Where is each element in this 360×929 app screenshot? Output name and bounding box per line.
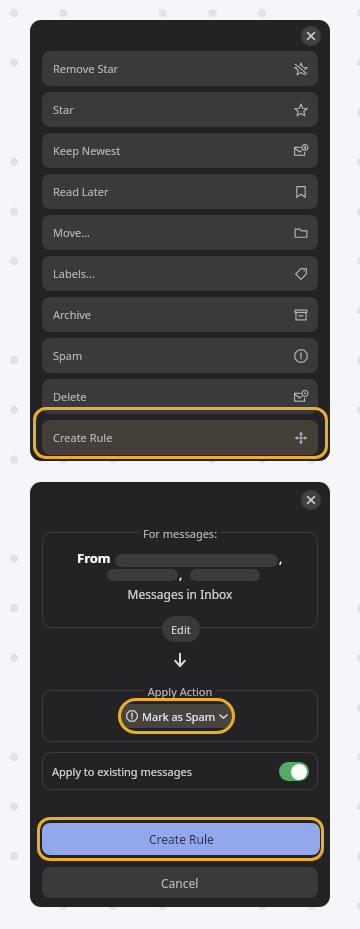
button[interactable]: Remove Star <box>42 51 318 86</box>
staticText: Remove Star <box>53 61 119 76</box>
staticText: , <box>179 566 183 582</box>
staticText: Labels... <box>53 266 95 281</box>
button[interactable]: Labels... <box>42 256 318 291</box>
staticText: Create Rule <box>149 831 214 847</box>
staticText: Archive <box>53 307 92 322</box>
button[interactable]: Edit <box>162 616 200 642</box>
staticText: Apply to existing messages <box>52 764 192 779</box>
button[interactable]: Close <box>301 26 321 46</box>
button[interactable]: Apply to existing messages <box>42 752 318 790</box>
staticText: Star <box>53 102 74 117</box>
button[interactable]: Delete <box>42 379 318 414</box>
button[interactable]: Create Rule <box>42 420 318 455</box>
staticText: Cancel <box>161 875 199 891</box>
staticText: Create Rule <box>53 430 113 445</box>
staticText: Spam <box>53 348 83 363</box>
staticText: Move... <box>53 225 91 240</box>
staticText: For messages: <box>30 526 330 541</box>
button[interactable]: Keep Newest <box>42 133 318 168</box>
staticText: Read Later <box>53 184 109 199</box>
button[interactable]: Close <box>301 490 321 510</box>
staticText: Mark as Spam <box>142 709 215 724</box>
button[interactable]: Cancel <box>42 867 318 898</box>
staticText: Edit <box>171 622 191 637</box>
button[interactable]: Read Later <box>42 174 318 209</box>
button[interactable]: Spam <box>42 338 318 373</box>
button[interactable]: Move... <box>42 215 318 250</box>
button[interactable]: Mark as Spam <box>118 704 235 728</box>
button[interactable]: Star <box>42 92 318 127</box>
button[interactable]: Archive <box>42 297 318 332</box>
staticText: Messages in Inbox <box>30 586 330 602</box>
staticText: Delete <box>53 389 87 404</box>
staticText: Apply Action <box>30 684 330 699</box>
button[interactable]: Create Rule <box>42 823 320 855</box>
staticText: From <box>77 549 111 567</box>
staticText: , <box>279 550 283 566</box>
staticText: Keep Newest <box>53 143 121 158</box>
